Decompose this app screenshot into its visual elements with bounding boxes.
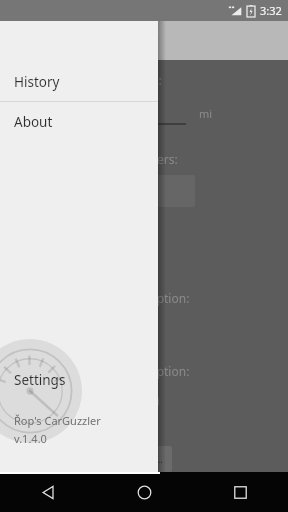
button[interactable]: Settings [0, 361, 158, 399]
button[interactable]: Back [0, 472, 96, 512]
staticText: Consumption: [110, 363, 190, 379]
button[interactable]: History [0, 62, 158, 101]
staticText: v.1.4.0 [14, 431, 47, 446]
button[interactable]: Home [96, 472, 192, 512]
button[interactable]: GIVE ME… [110, 446, 172, 472]
button[interactable]: Recent apps [192, 472, 288, 512]
staticText: History [14, 73, 60, 91]
staticText: 3:32 [260, 3, 282, 18]
staticText: Passengers: [110, 151, 178, 167]
staticText: Řop's CarGuzzler [14, 413, 101, 428]
button[interactable]: + [110, 175, 195, 207]
staticText: About [14, 113, 53, 131]
staticText: $/gal [132, 243, 159, 258]
staticText: Settings [14, 371, 66, 389]
staticText: Distance: [110, 72, 162, 88]
staticText: mi [199, 106, 213, 121]
staticText: Řop's CarGuzzler [40, 31, 159, 51]
staticText: Consumption: [110, 290, 190, 306]
staticText: $/mi [136, 393, 160, 408]
button[interactable]: About [0, 102, 158, 141]
staticText: GIVE ME… [120, 453, 163, 465]
staticText: 0.0 [110, 98, 133, 120]
